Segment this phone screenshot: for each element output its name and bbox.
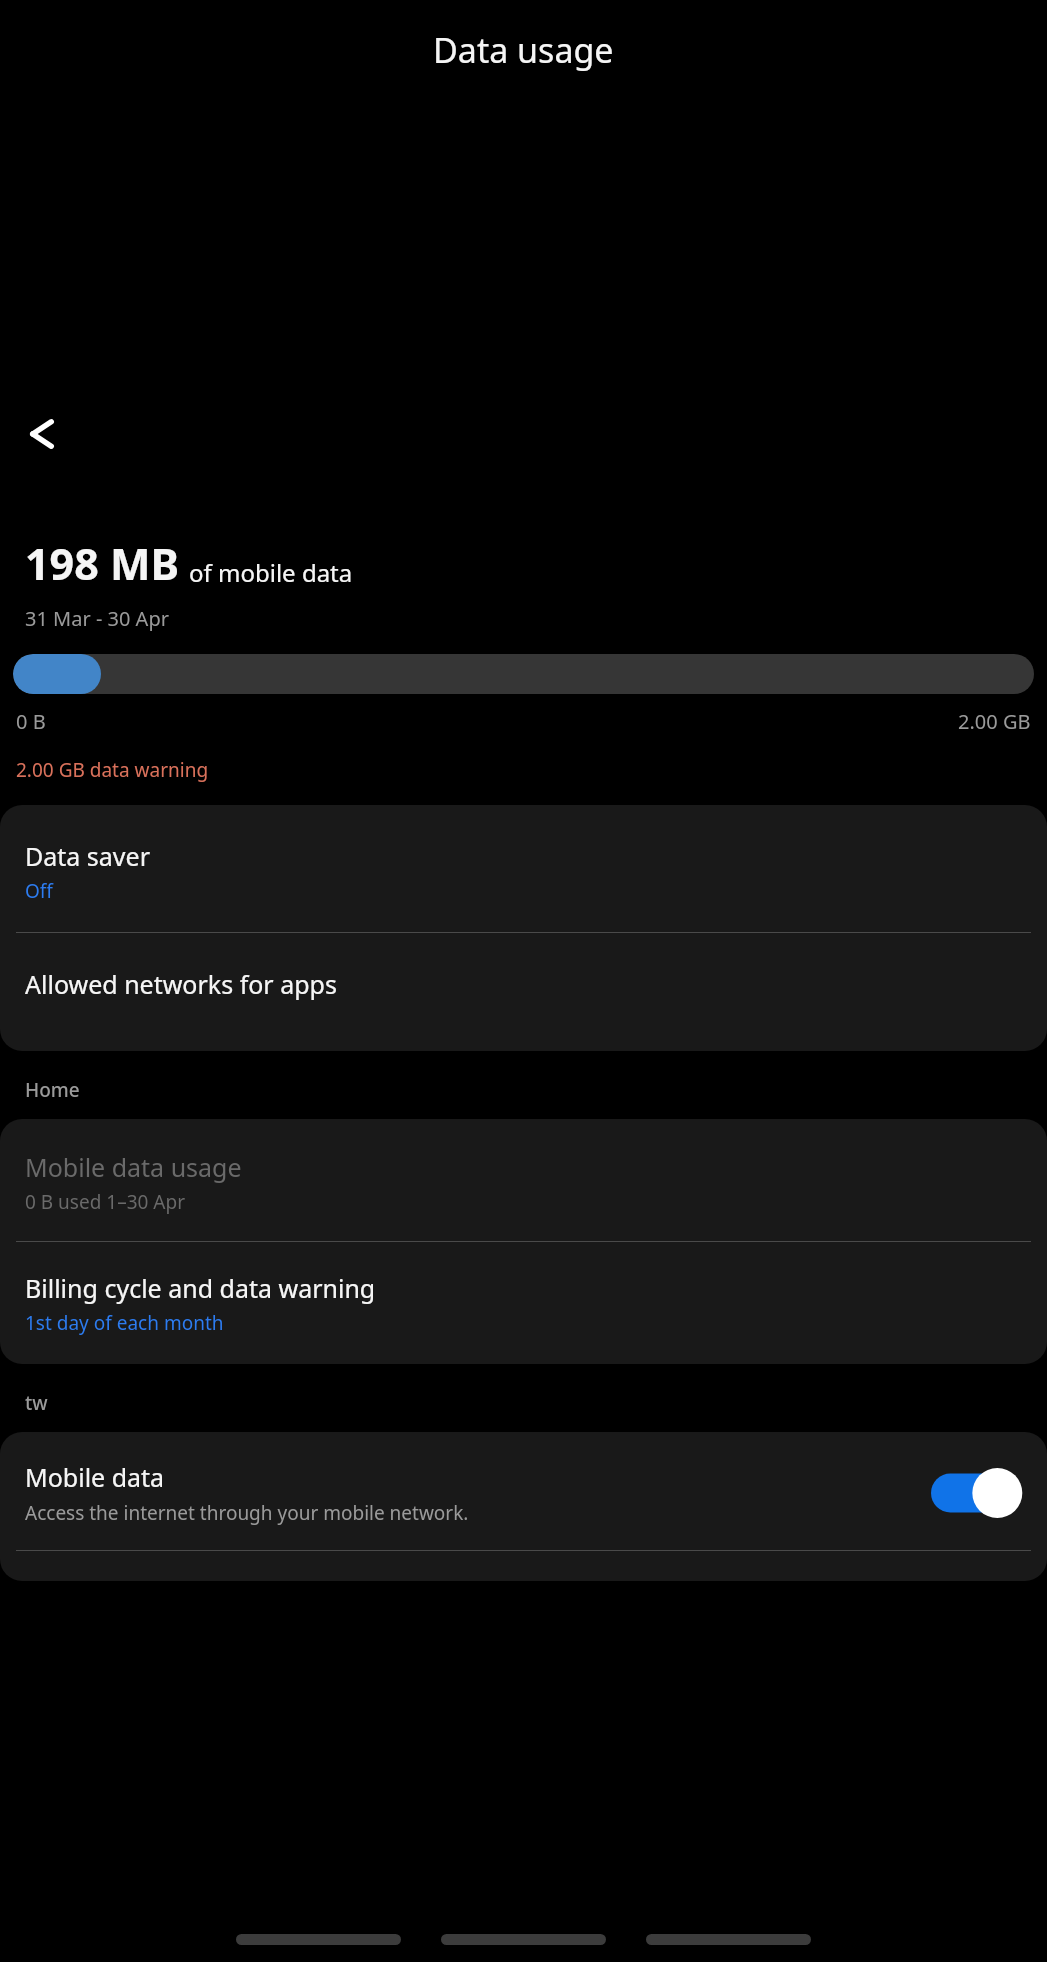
staticText: 31 Mar - 30 Apr bbox=[25, 605, 169, 632]
button[interactable]: Back bbox=[4, 396, 80, 472]
button[interactable]: Billing cycle and data warning bbox=[0, 1242, 1047, 1364]
staticText: 198 MB bbox=[25, 534, 180, 593]
staticText: 0 B bbox=[16, 708, 46, 735]
button[interactable]: Recent apps bbox=[236, 1924, 401, 1954]
staticText: 1st day of each month bbox=[25, 1310, 224, 1336]
staticText: tw bbox=[25, 1390, 48, 1416]
staticText: Data usage bbox=[433, 27, 614, 73]
staticText: of mobile data bbox=[189, 556, 353, 589]
button[interactable]: Mobile data usage bbox=[0, 1119, 1047, 1241]
staticText: Billing cycle and data warning bbox=[25, 1271, 376, 1305]
button[interactable]: Mobile data, on bbox=[931, 1468, 1025, 1518]
staticText: Access the internet through your mobile … bbox=[25, 1500, 469, 1526]
staticText: Mobile data bbox=[25, 1460, 165, 1494]
staticText: 2.00 GB data warning bbox=[16, 757, 209, 783]
staticText: Mobile data usage bbox=[25, 1150, 242, 1184]
staticText: Data saver bbox=[25, 839, 150, 873]
button[interactable]: Back bbox=[646, 1924, 811, 1954]
staticText: Allowed networks for apps bbox=[25, 967, 337, 1001]
button[interactable]: Allowed networks for apps bbox=[0, 933, 1047, 1051]
staticText: Off bbox=[25, 878, 53, 904]
staticText: 2.00 GB bbox=[958, 708, 1031, 735]
button[interactable]: Home bbox=[441, 1924, 606, 1954]
button[interactable]: Mobile data bbox=[0, 1432, 1047, 1550]
staticText: Home bbox=[25, 1077, 80, 1103]
button[interactable]: Data saver bbox=[0, 805, 1047, 932]
staticText: 0 B used 1–30 Apr bbox=[25, 1189, 185, 1215]
